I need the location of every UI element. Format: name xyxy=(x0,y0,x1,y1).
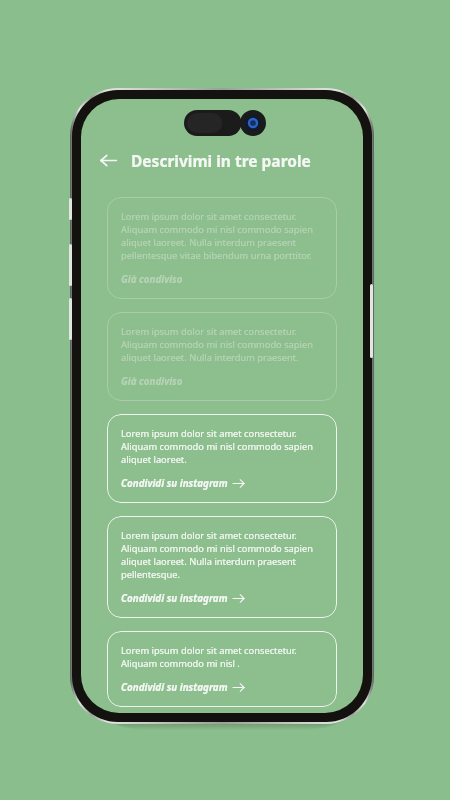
button[interactable]: Lorem ipsum dolor sit amet consectetur. … xyxy=(107,516,337,618)
button[interactable]: Lorem ipsum dolor sit amet consectetur. … xyxy=(107,197,337,299)
staticText: Lorem ipsum dolor sit amet consectetur. … xyxy=(121,210,325,262)
staticText: Descrivimi in tre parole xyxy=(131,150,311,171)
staticText: Già condiviso xyxy=(121,375,183,388)
staticText: Già condiviso xyxy=(121,273,183,286)
button[interactable]: Lorem ipsum dolor sit amet consectetur. … xyxy=(107,312,337,401)
staticText: Condividi su instagram xyxy=(121,477,228,490)
staticText: Lorem ipsum dolor sit amet consectetur. … xyxy=(121,644,325,670)
staticText: Lorem ipsum dolor sit amet consectetur. … xyxy=(121,325,325,364)
button[interactable]: Back xyxy=(93,145,123,175)
button[interactable]: Lorem ipsum dolor sit amet consectetur. … xyxy=(107,414,337,503)
staticText: Lorem ipsum dolor sit amet consectetur. … xyxy=(121,529,325,581)
staticText: Condividi su instagram xyxy=(121,681,228,694)
staticText: Lorem ipsum dolor sit amet consectetur. … xyxy=(121,427,325,466)
button[interactable]: Lorem ipsum dolor sit amet consectetur. … xyxy=(107,631,337,707)
staticText: Condividi su instagram xyxy=(121,592,228,605)
